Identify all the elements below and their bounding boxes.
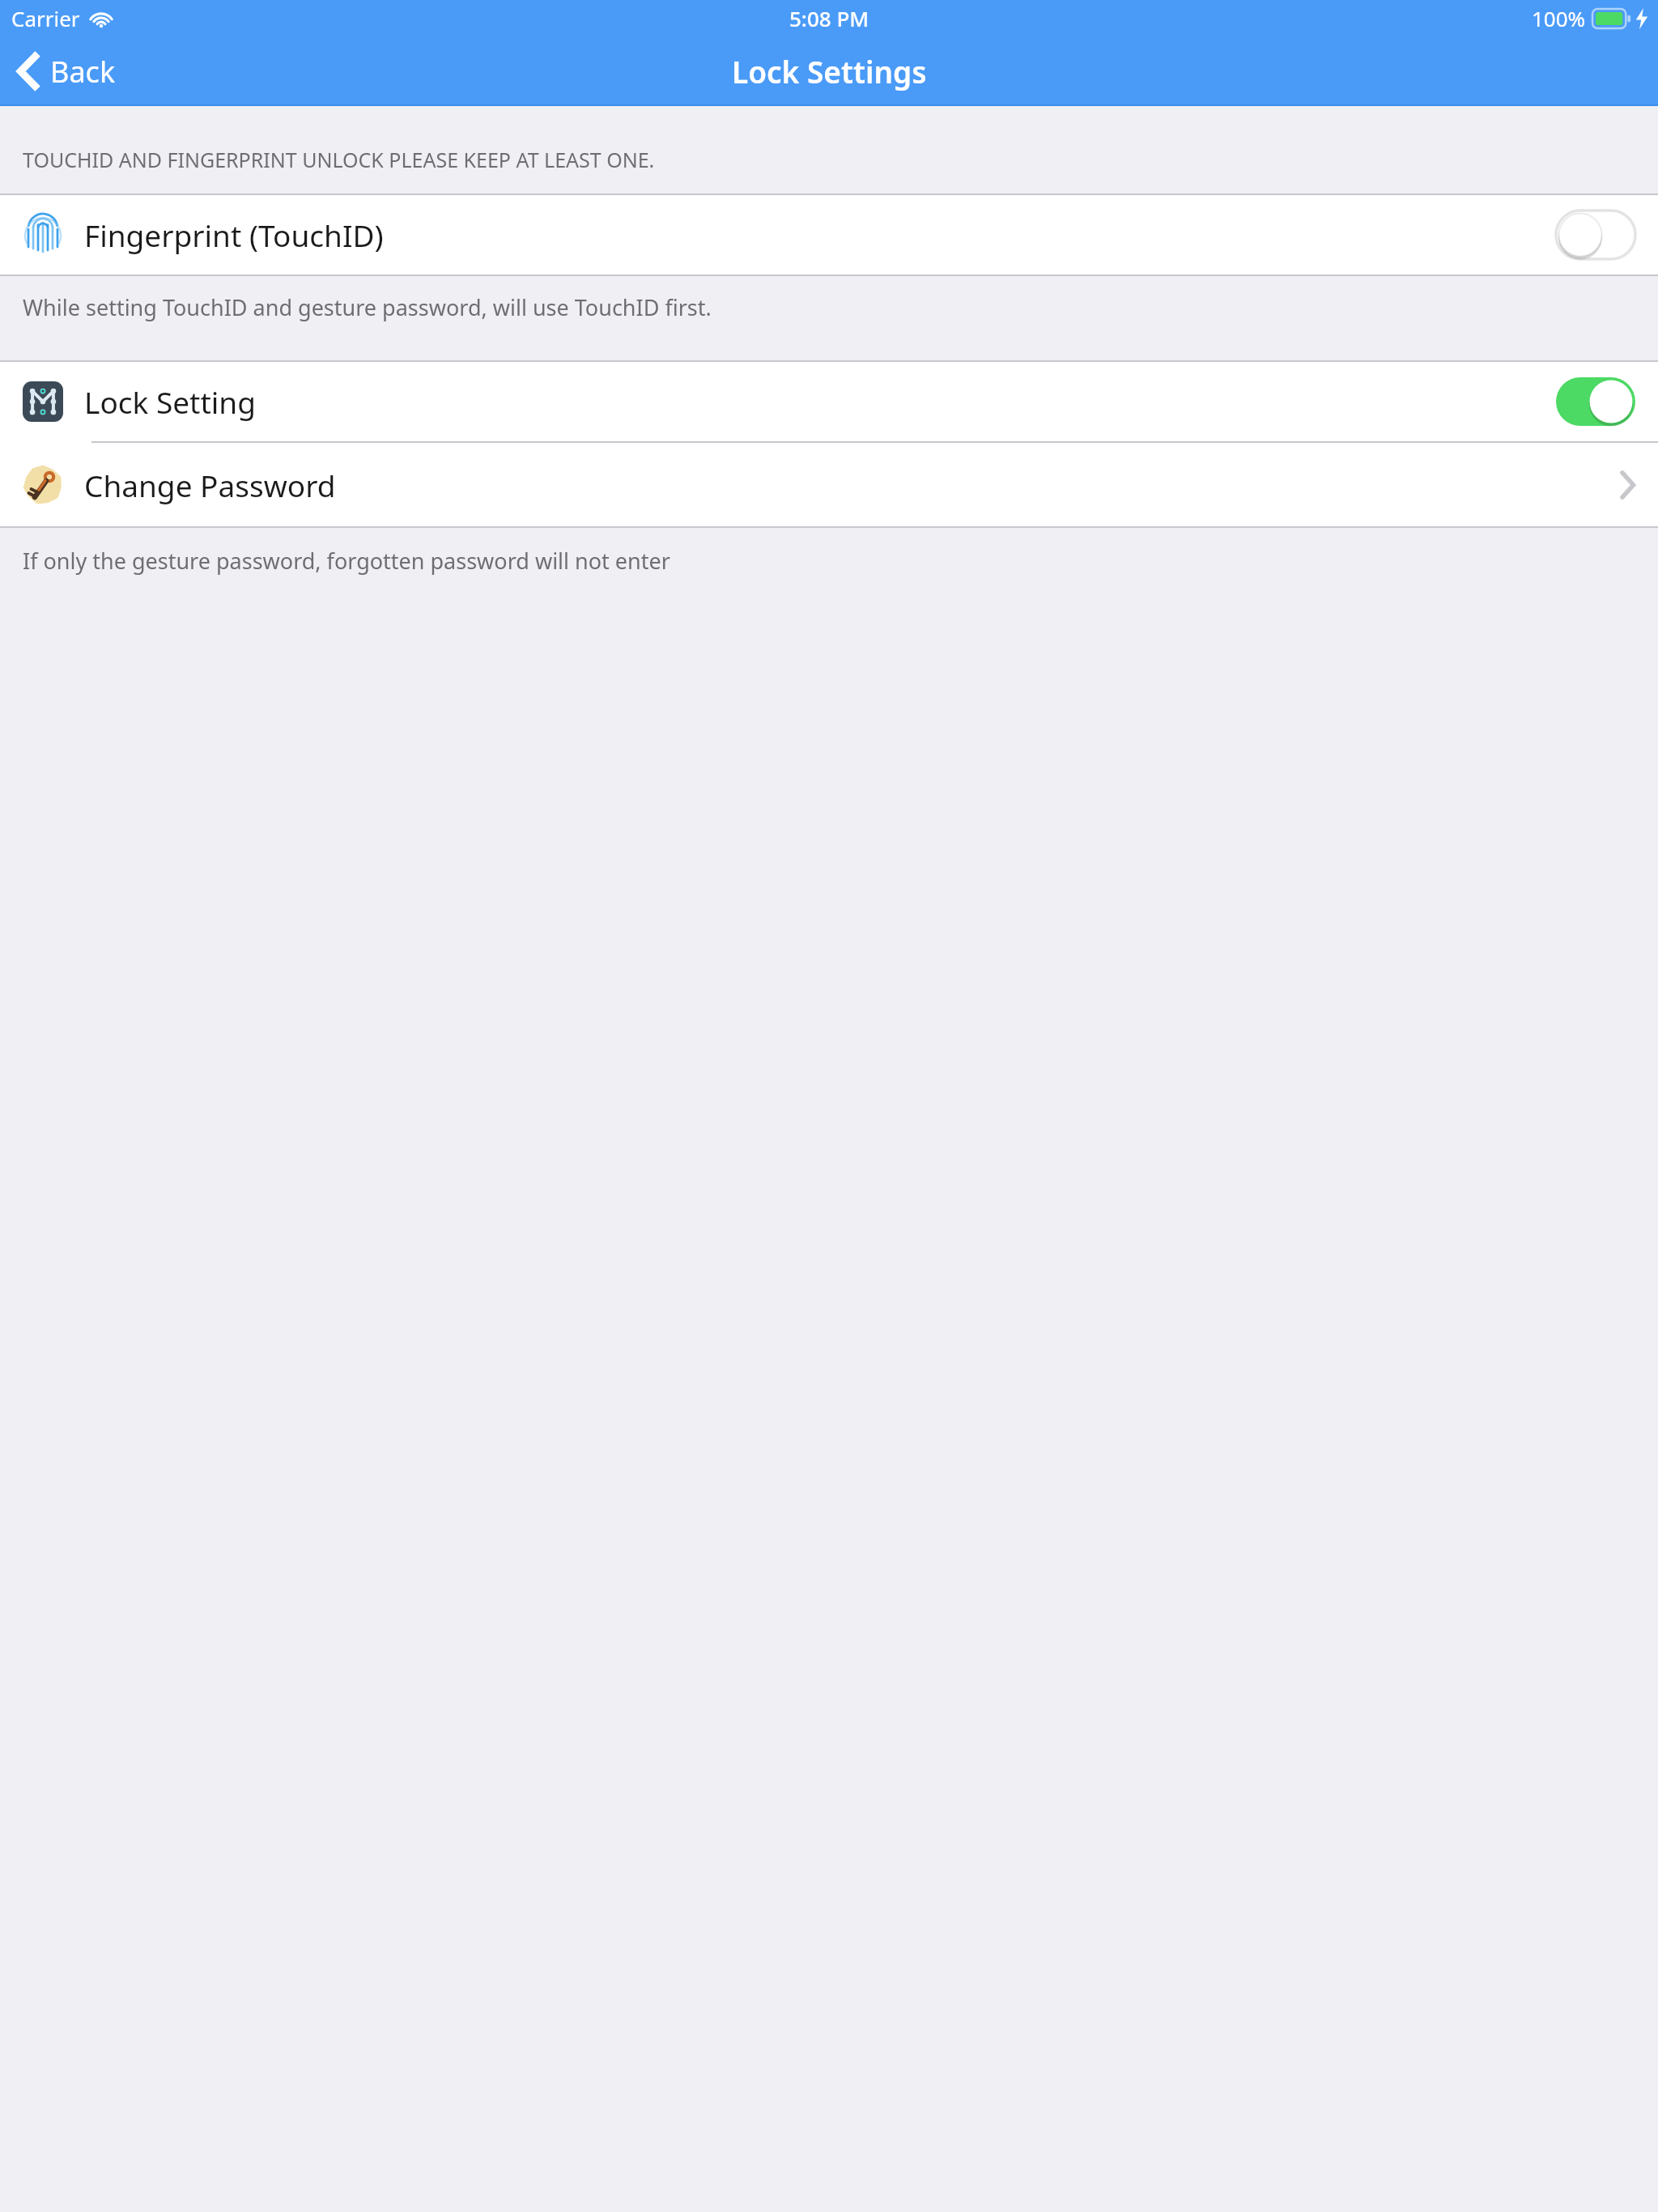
button[interactable]: Change Password — [0, 443, 1658, 526]
staticText: Fingerprint (TouchID) — [84, 215, 384, 255]
staticText: Lock Settings — [732, 51, 927, 91]
staticText: Change Password — [84, 465, 336, 505]
staticText: While setting TouchID and gesture passwo… — [23, 292, 712, 322]
button[interactable]: Toggle off — [1556, 211, 1635, 259]
button[interactable]: Fingerprint (TouchID) — [0, 195, 1658, 274]
staticText: Lock Setting — [84, 381, 256, 422]
staticText: 5:08 PM — [789, 4, 869, 32]
staticText: 100% — [1532, 4, 1586, 32]
button[interactable]: Lock Setting — [0, 362, 1658, 441]
staticText: Back — [50, 52, 116, 91]
staticText: TOUCHID AND FINGERPRINT UNLOCK PLEASE KE… — [23, 146, 655, 173]
button[interactable]: Toggle on — [1556, 377, 1635, 426]
staticText: If only the gesture password, forgotten … — [23, 546, 670, 576]
staticText: Carrier — [11, 4, 80, 32]
button[interactable]: Back — [0, 36, 135, 106]
